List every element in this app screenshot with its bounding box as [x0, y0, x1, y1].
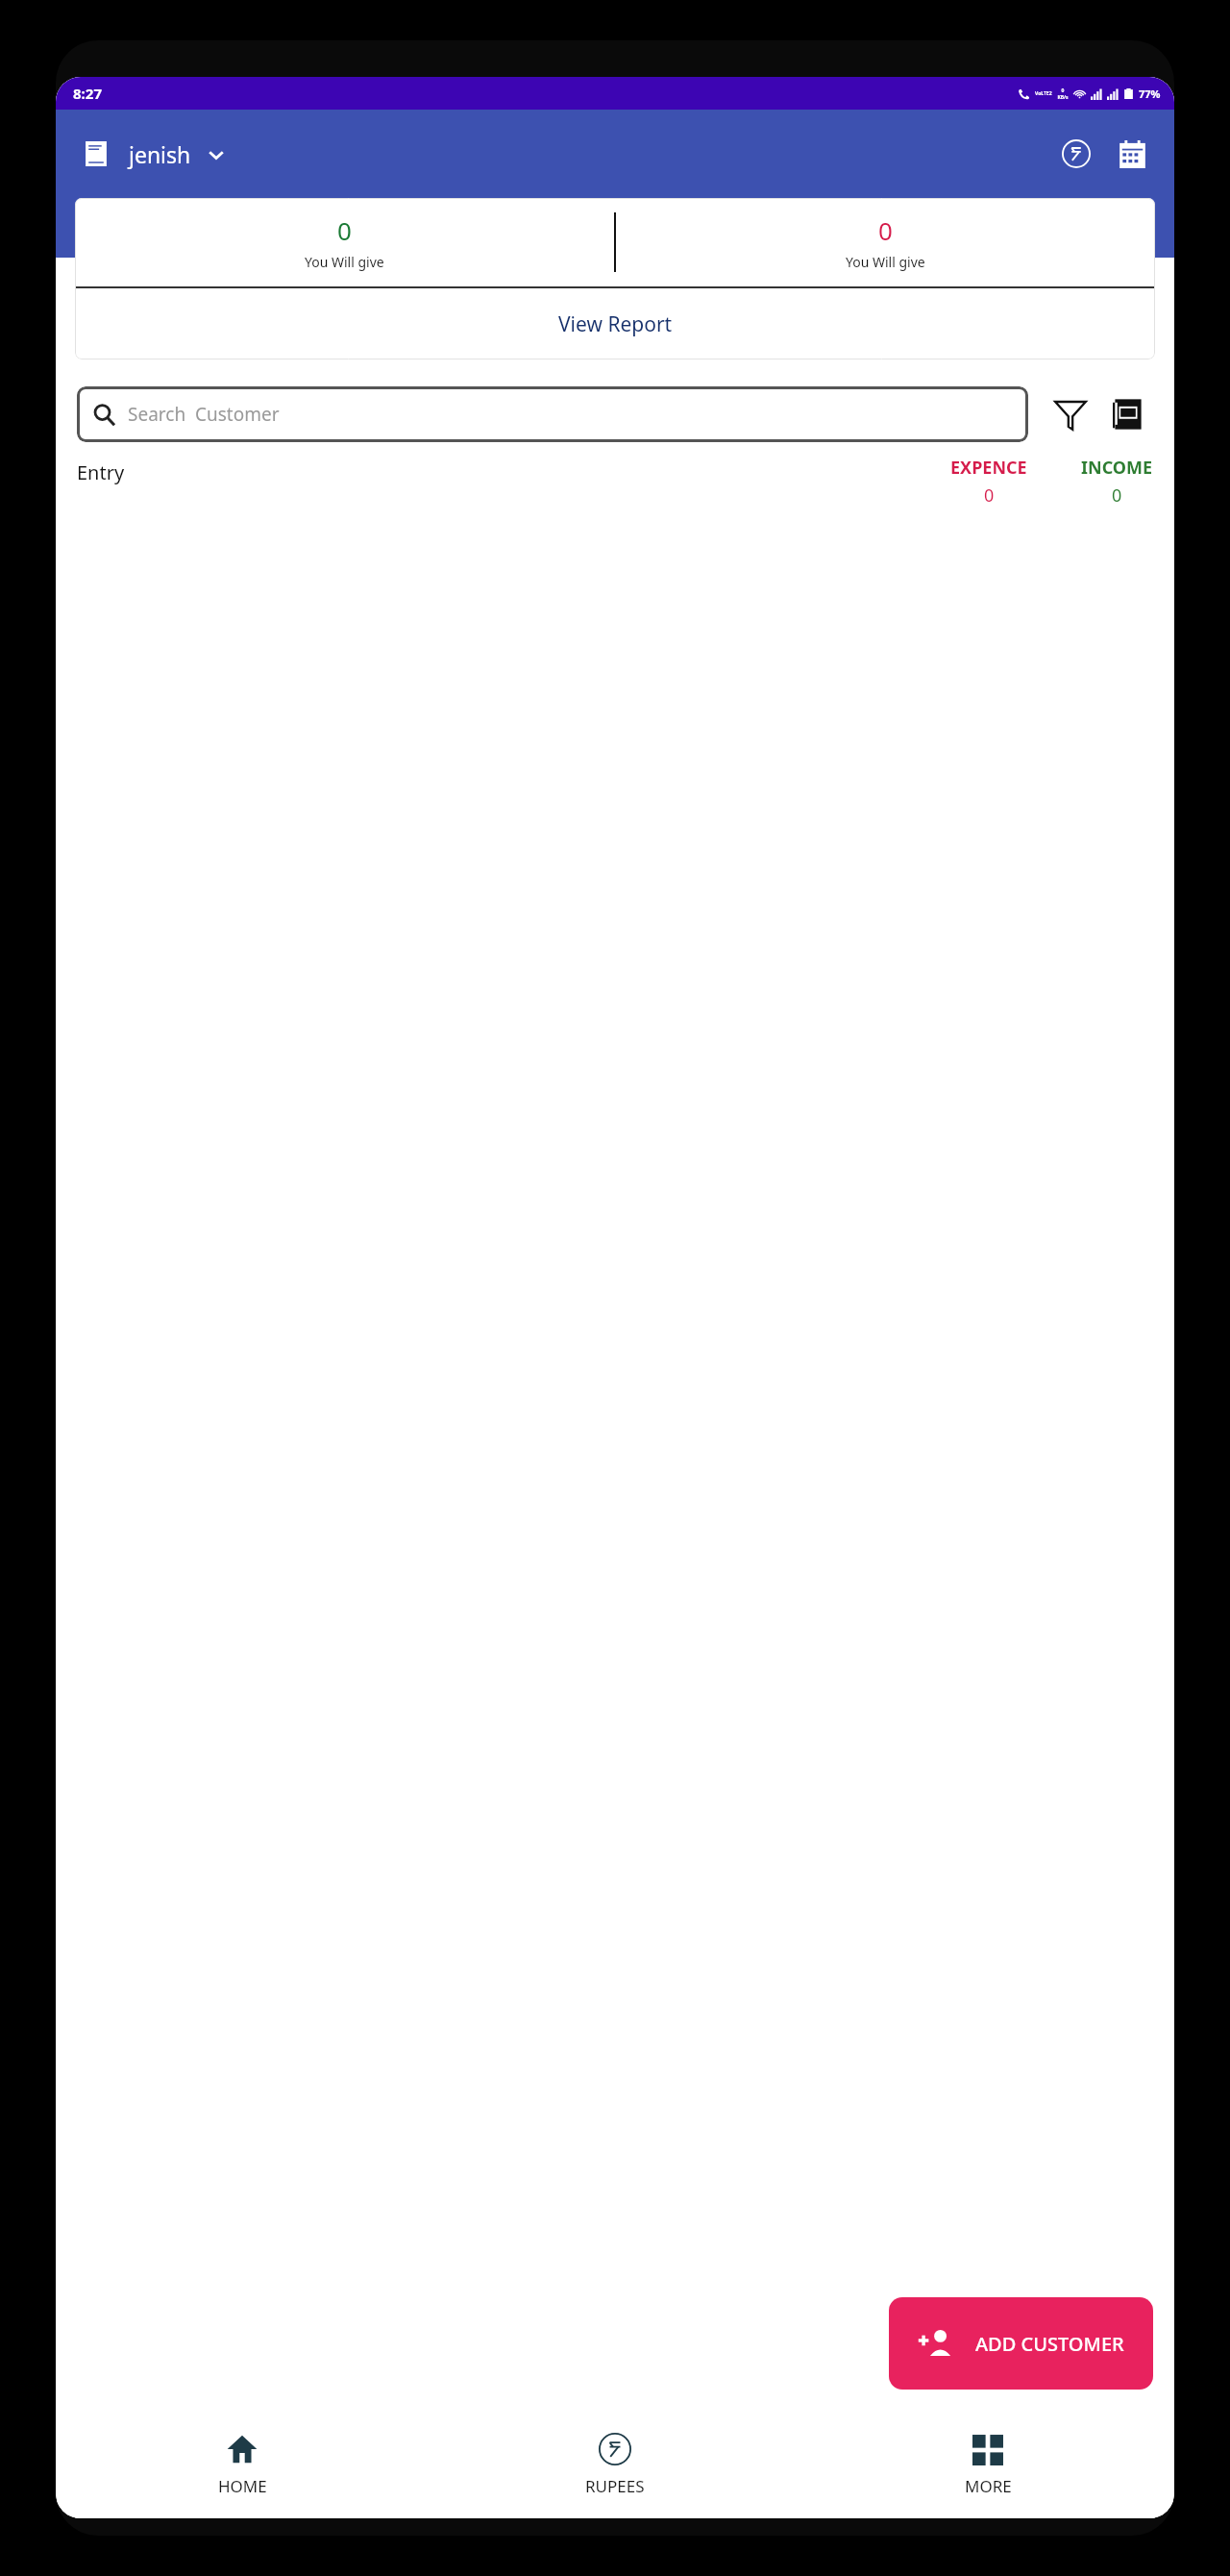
button[interactable]: Search Customer — [77, 386, 1028, 442]
staticText: You Will give — [305, 253, 384, 271]
button[interactable]: HOME — [56, 2411, 429, 2518]
staticText: 0 — [984, 483, 995, 508]
staticText: RUPEES — [585, 2475, 645, 2497]
button[interactable]: Export PDF — [1103, 389, 1153, 439]
button[interactable]: Filter — [1045, 389, 1095, 439]
staticText: jenish — [129, 139, 191, 169]
staticText: Search Customer — [128, 402, 280, 427]
staticText: 0 — [878, 213, 893, 247]
button[interactable]: Ledger book — [75, 133, 117, 175]
staticText: Entry — [77, 459, 125, 485]
staticText: INCOME — [1081, 456, 1153, 480]
staticText: 77% — [1139, 87, 1161, 101]
button[interactable]: Calendar — [1109, 131, 1155, 177]
staticText: VoLTE2 — [1035, 90, 1052, 97]
staticText: EXPENCE — [950, 456, 1027, 480]
staticText: ADD CUSTOMER — [975, 2331, 1124, 2357]
staticText: You Will give — [846, 253, 925, 271]
staticText: View Report — [558, 310, 673, 338]
button[interactable]: RUPEES — [429, 2411, 801, 2518]
button[interactable]: jenish — [129, 139, 226, 169]
staticText: 8:27 — [73, 84, 102, 103]
button[interactable]: ADD CUSTOMER — [889, 2297, 1153, 2390]
button[interactable]: 0 — [616, 213, 1155, 271]
staticText: 0 — [337, 213, 352, 247]
staticText: HOME — [218, 2475, 267, 2497]
staticText: MORE — [965, 2475, 1012, 2497]
button[interactable]: View Report — [75, 288, 1155, 359]
staticText: 0 — [1112, 483, 1122, 508]
button[interactable]: MORE — [801, 2411, 1174, 2518]
staticText: 0 KB/s — [1057, 87, 1069, 101]
button[interactable]: Rupees — [1053, 131, 1099, 177]
button[interactable]: 0 — [75, 213, 614, 271]
